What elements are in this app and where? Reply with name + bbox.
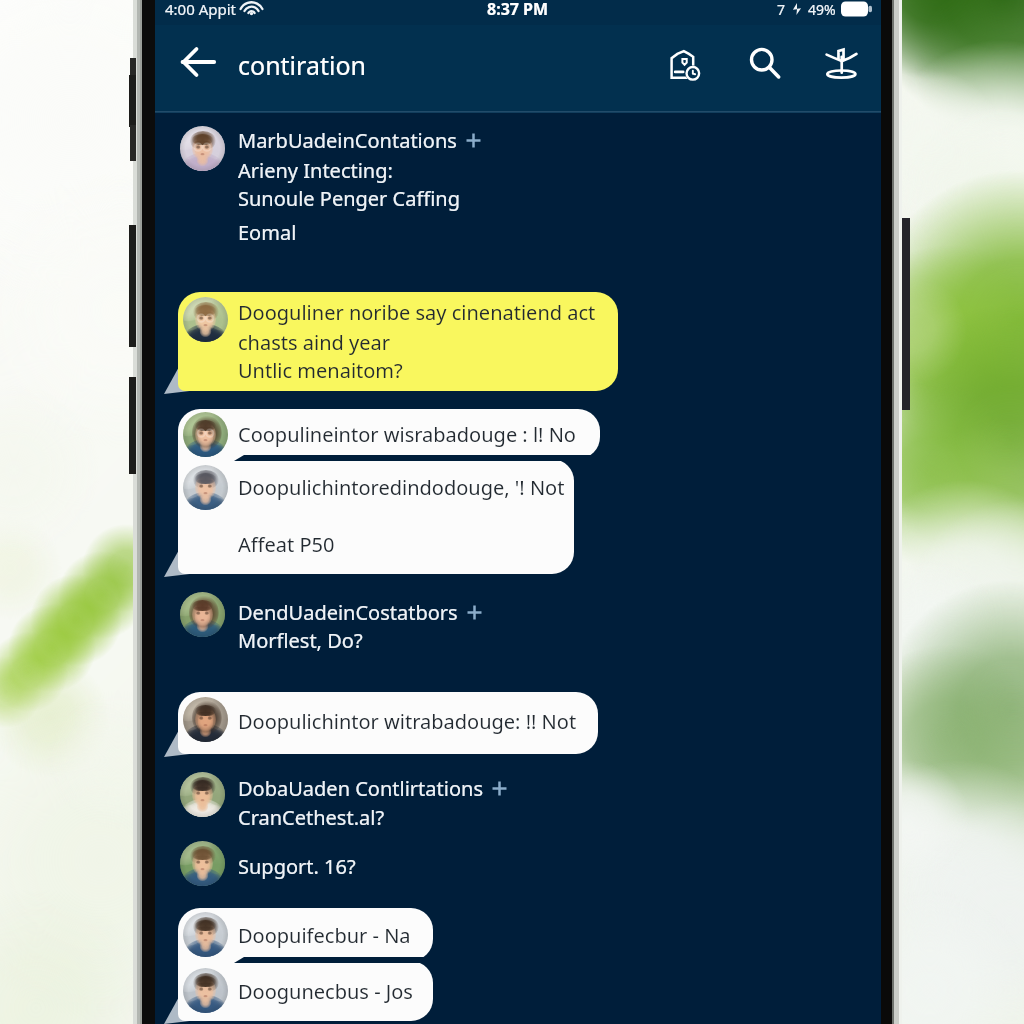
staticText: 8:37 PM [487,0,549,20]
button[interactable]: Schedule [662,40,710,88]
button[interactable]: Back [175,39,221,85]
button[interactable]: Doopulichintor witrabadouge: !! Not [178,692,598,754]
staticText: 7 [777,0,786,19]
button[interactable]: Coopulineintor wisrabadouge : l! No [178,409,600,459]
staticText: Eomal [238,219,297,246]
staticText: MarbUadeinContations [238,127,457,154]
button[interactable]: DobaUaden Contlirtations [180,772,720,832]
staticText: Sunoule Penger Caffing [238,185,461,212]
button[interactable]: Supgort. 16? [180,841,720,886]
button[interactable]: Plant [817,40,865,88]
button[interactable]: MarbUadeinContations [180,126,720,247]
staticText: Affeat P50 [238,531,335,558]
staticText: Doopulichintor witrabadouge: !! Not [238,708,577,735]
staticText: Dooguliner noribe say cinenatiend act [238,299,596,326]
button[interactable]: Search [741,40,789,88]
staticText: Supgort. 16? [238,853,356,880]
button[interactable]: Doopulichintoredindodouge, '! Not [178,459,574,574]
staticText: DendUadeinCostatbors [238,599,458,626]
staticText: chasts aind year [238,329,390,356]
staticText: Doopulichintoredindodouge, '! Not [238,474,565,501]
staticText: Doopuifecbur - Na [238,922,411,949]
button[interactable]: Dooguliner noribe say cinenatiend act [178,292,618,391]
button[interactable]: Doopuifecbur - Na [178,908,433,961]
staticText: Untlic menaitom? [238,357,403,384]
staticText: 49% [808,0,836,19]
staticText: CranCethest.al? [238,804,385,831]
staticText: Morflest, Do? [238,627,363,654]
button[interactable]: Doogunecbus - Jos [178,961,433,1021]
staticText: Coopulineintor wisrabadouge : l! No [238,421,576,448]
staticText: DobaUaden Contlirtations [238,775,483,802]
button[interactable]: DendUadeinCostatbors [180,592,720,655]
staticText: Arieny Intecting: [238,157,393,184]
staticText: 4:00 Appit [165,0,236,19]
staticText: contiration [238,48,366,82]
staticText: Doogunecbus - Jos [238,978,413,1005]
button[interactable]: contiration [232,44,372,86]
